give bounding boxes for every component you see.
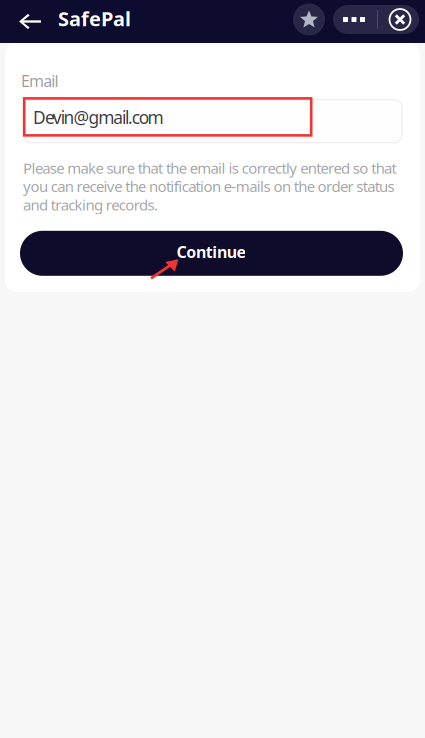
staticText: SafePal bbox=[58, 5, 131, 32]
button[interactable]: More options and close bbox=[333, 0, 419, 45]
staticText: Email bbox=[21, 70, 58, 92]
button[interactable]: Continue bbox=[20, 231, 403, 276]
button[interactable]: Add to favourites bbox=[293, 0, 325, 45]
staticText: Please make sure that the email is corre… bbox=[23, 158, 397, 215]
staticText: Devin@gmail.com bbox=[33, 105, 164, 129]
button[interactable]: Back bbox=[0, 0, 41, 43]
staticText: Continue bbox=[176, 241, 246, 263]
